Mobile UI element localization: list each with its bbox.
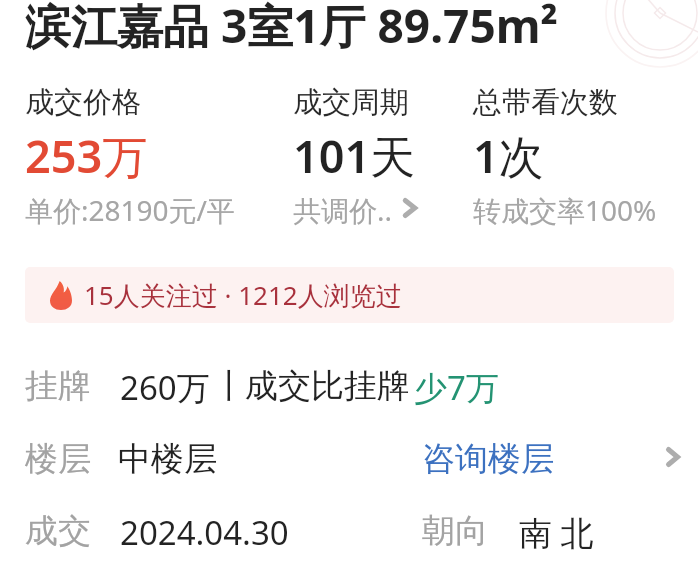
staticText: 咨询楼层 (422, 438, 554, 480)
staticText: 共调价.. (293, 191, 393, 229)
staticText: 253万 (25, 125, 148, 186)
staticText: 成交 (25, 510, 91, 552)
staticText: 楼层 (25, 438, 91, 480)
staticText: 总带看次数 (473, 84, 618, 121)
staticText: 15人关注过 · 1212人浏览过 (84, 277, 402, 313)
staticText: 101天 (293, 125, 416, 186)
button[interactable]: 挂牌 (0, 356, 698, 424)
staticText: 南 北 (519, 510, 594, 555)
staticText: 中楼层 (118, 438, 217, 480)
staticText: 挂牌 (25, 365, 91, 407)
staticText: 1次 (473, 125, 544, 186)
button[interactable]: 15人关注过 · 1212人浏览过 (25, 267, 674, 323)
staticText: 滨江嘉品 3室1厅 89.75m² (25, 0, 559, 57)
staticText: 2024.04.30 (120, 510, 289, 555)
button[interactable]: 楼层 (0, 426, 698, 496)
staticText: 260万 (120, 365, 210, 410)
staticText: 单价:28190元/平 (25, 191, 236, 229)
staticText: 丨 (213, 365, 246, 407)
staticText: 成交价格 (25, 84, 141, 121)
staticText: 朝向 (422, 510, 488, 552)
staticText: 少7万 (414, 365, 499, 410)
button[interactable]: 共调价.. (290, 188, 422, 228)
staticText: 转成交率100% (473, 191, 657, 229)
staticText: 成交比挂牌 (245, 365, 410, 407)
button[interactable]: 成交 (0, 500, 698, 568)
other: 咨询楼层 (662, 444, 684, 470)
staticText: 成交周期 (293, 84, 409, 121)
